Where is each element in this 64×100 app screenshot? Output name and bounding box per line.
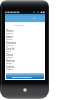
staticText: Favorites [14,24,24,27]
button[interactable]: Nathan [5,58,45,64]
button[interactable]: Trackball [23,88,27,92]
staticText: Charlie [6,47,15,50]
button[interactable]: Brandon [5,40,45,46]
staticText: work [6,50,12,52]
button[interactable]: Sophie [5,64,45,70]
staticText: Brandon [6,41,17,44]
staticText: mobile [6,68,14,70]
staticText: mobile [6,32,14,34]
staticText: Diana [6,53,13,56]
staticText: Phone [6,29,14,32]
staticText: Nathan [6,59,15,62]
button[interactable]: Search [33,17,36,20]
staticText: home [6,62,12,64]
staticText: home [6,38,12,40]
button[interactable]: View all contacts [6,73,44,79]
button[interactable]: Aaron [5,34,45,40]
staticText: mobile [6,56,14,58]
staticText: Sophie [6,65,15,68]
button[interactable]: Diana [5,52,45,58]
staticText: mobile [6,44,14,46]
staticText: Aaron [6,35,14,38]
button[interactable]: Charlie [5,46,45,52]
staticText: View all contacts [12,75,32,78]
button[interactable]: Phone [5,28,45,34]
